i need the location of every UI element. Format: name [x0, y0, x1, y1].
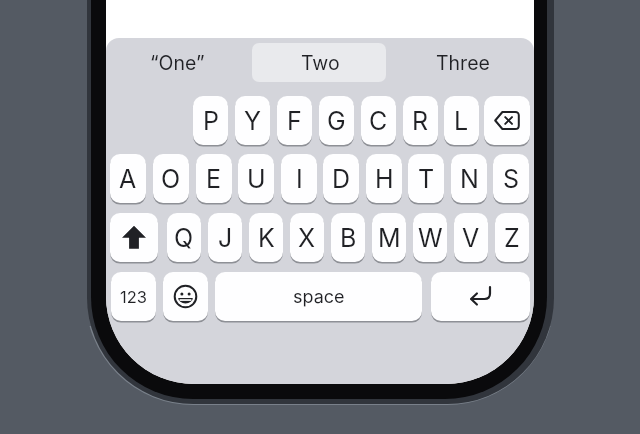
button[interactable]: Y: [235, 96, 270, 145]
button[interactable]: “One”: [106, 43, 249, 82]
staticText: R: [412, 106, 429, 136]
staticText: O: [161, 164, 181, 194]
button[interactable]: [252, 43, 386, 82]
staticText: T: [418, 164, 435, 194]
staticText: X: [298, 223, 316, 253]
button[interactable]: I: [281, 154, 317, 203]
button[interactable]: P: [193, 96, 228, 145]
staticText: N: [460, 164, 479, 194]
button[interactable]: [163, 272, 208, 321]
staticText: E: [206, 164, 222, 194]
staticText: Two: [301, 51, 340, 75]
button[interactable]: [484, 96, 530, 145]
staticText: L: [454, 106, 469, 136]
staticText: Z: [504, 223, 520, 253]
staticText: V: [462, 223, 480, 253]
staticText: S: [503, 164, 520, 194]
staticText: Y: [244, 106, 261, 136]
button[interactable]: K: [249, 213, 283, 262]
button[interactable]: R: [403, 96, 438, 145]
staticText: W: [418, 223, 443, 253]
button[interactable]: F: [277, 96, 312, 145]
button[interactable]: W: [413, 213, 447, 262]
staticText: I: [296, 164, 303, 194]
button[interactable]: 123: [111, 272, 156, 321]
staticText: H: [375, 164, 394, 194]
button[interactable]: E: [196, 154, 232, 203]
staticText: Three: [436, 51, 490, 75]
staticText: C: [369, 106, 388, 136]
button[interactable]: V: [454, 213, 488, 262]
staticText: P: [203, 106, 219, 136]
button[interactable]: A: [110, 154, 146, 203]
button[interactable]: Z: [495, 213, 529, 262]
button[interactable]: Two: [249, 43, 392, 82]
button[interactable]: Three: [391, 43, 534, 82]
button[interactable]: B: [331, 213, 365, 262]
button[interactable]: L: [444, 96, 479, 145]
button[interactable]: G: [319, 96, 354, 145]
button[interactable]: U: [238, 154, 274, 203]
button[interactable]: T: [408, 154, 444, 203]
button[interactable]: D: [323, 154, 359, 203]
button[interactable]: J: [208, 213, 242, 262]
staticText: B: [340, 223, 357, 253]
staticText: “One”: [150, 51, 205, 75]
button[interactable]: [110, 213, 158, 262]
button[interactable]: S: [493, 154, 529, 203]
staticText: Q: [174, 223, 194, 253]
button[interactable]: O: [153, 154, 189, 203]
staticText: G: [327, 106, 346, 136]
button[interactable]: [431, 272, 530, 321]
staticText: space: [293, 286, 345, 308]
button[interactable]: M: [372, 213, 406, 262]
staticText: F: [287, 106, 302, 136]
button[interactable]: X: [290, 213, 324, 262]
button[interactable]: N: [451, 154, 487, 203]
staticText: 123: [120, 287, 147, 307]
button[interactable]: space: [215, 272, 422, 321]
button[interactable]: Q: [167, 213, 201, 262]
staticText: K: [258, 223, 275, 253]
staticText: U: [247, 164, 266, 194]
staticText: J: [218, 223, 233, 253]
staticText: D: [332, 164, 351, 194]
staticText: M: [378, 223, 401, 253]
staticText: A: [119, 164, 137, 194]
button[interactable]: C: [361, 96, 396, 145]
button[interactable]: H: [366, 154, 402, 203]
